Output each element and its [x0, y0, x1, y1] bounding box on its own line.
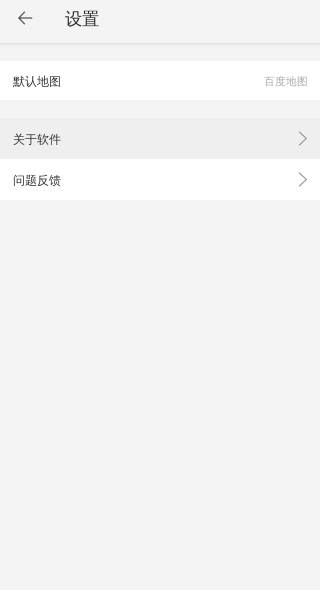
staticText: 问题反馈 — [13, 173, 61, 188]
staticText: 设置 — [65, 8, 99, 30]
staticText: 关于软件 — [13, 132, 61, 147]
button[interactable]: 问题反馈 — [0, 159, 320, 200]
staticText: 默认地图 — [13, 74, 61, 89]
button[interactable]: Back — [9, 0, 42, 36]
staticText: 百度地图 — [264, 75, 308, 88]
button[interactable]: 关于软件 — [0, 118, 320, 159]
button[interactable]: 默认地图 — [0, 61, 320, 100]
